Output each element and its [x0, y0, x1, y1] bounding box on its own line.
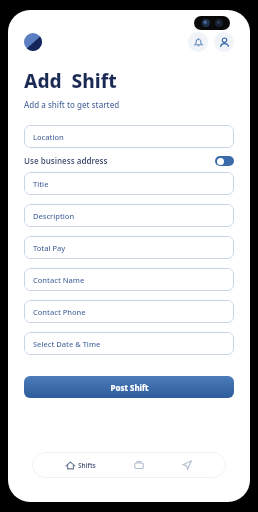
button[interactable]: Shifts	[62, 457, 100, 474]
button[interactable]: Description	[24, 204, 234, 227]
button[interactable]: Profile	[214, 32, 234, 52]
button[interactable]: Location	[24, 125, 234, 148]
button[interactable]: Jobs	[130, 456, 148, 474]
button[interactable]: Total Pay	[24, 236, 234, 259]
staticText: Select Date & Time	[33, 339, 101, 349]
staticText: Add a shift to get started	[24, 99, 120, 110]
staticText: Location	[33, 132, 64, 142]
staticText: Description	[33, 211, 75, 221]
staticText: Title	[33, 179, 49, 189]
staticText: Contact Name	[33, 275, 85, 285]
staticText: Shifts	[78, 461, 96, 470]
staticText: Use business address	[24, 155, 108, 166]
button[interactable]: Send	[178, 456, 196, 474]
button[interactable]: Notifications	[188, 32, 208, 52]
button[interactable]: Post Shift	[24, 376, 234, 398]
button[interactable]: Contact Name	[24, 268, 234, 291]
button[interactable]: Contact Phone	[24, 300, 234, 323]
button[interactable]: Use business address	[24, 155, 234, 166]
staticText: Total Pay	[33, 243, 66, 253]
button[interactable]: Select Date & Time	[24, 332, 234, 355]
button[interactable]: Title	[24, 172, 234, 195]
staticText: Contact Phone	[33, 307, 86, 317]
staticText: Post Shift	[110, 382, 149, 393]
button[interactable]: App logo	[24, 33, 42, 51]
staticText: Add Shift	[24, 68, 117, 94]
